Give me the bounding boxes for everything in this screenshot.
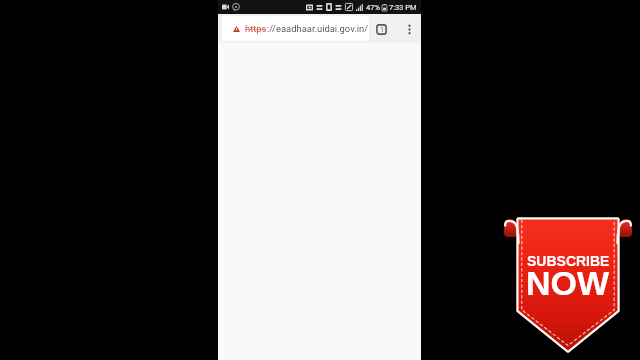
- button[interactable]: https: [222, 16, 369, 41]
- staticText: ://eaadhaar.uidai.gov.in/: [267, 23, 369, 34]
- staticText: SUBSCRIBE: [527, 253, 610, 269]
- button[interactable]: More options: [404, 24, 415, 35]
- staticText: NOW: [526, 264, 610, 302]
- staticText: https: [245, 23, 267, 34]
- staticText: 7:33 PM: [389, 3, 417, 12]
- staticText: 47%: [366, 3, 380, 12]
- button[interactable]: Subscribe Now: [500, 215, 636, 355]
- button[interactable]: Tabs: 1 open: [376, 24, 387, 35]
- staticText: 1: [380, 26, 384, 34]
